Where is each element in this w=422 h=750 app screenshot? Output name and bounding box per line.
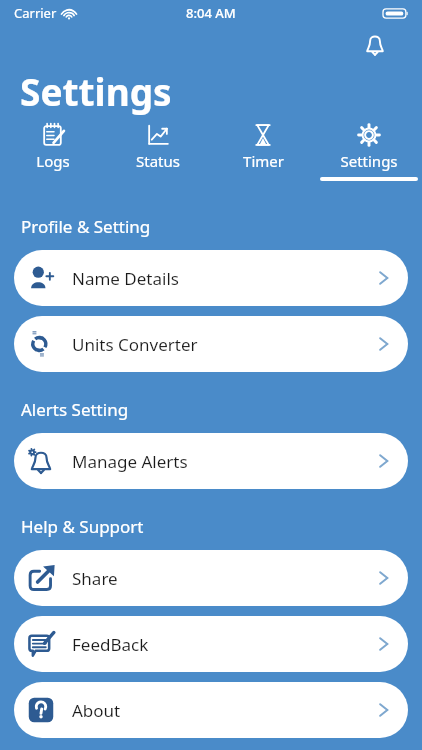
button[interactable]: Manage Alerts — [14, 433, 408, 489]
staticText: Alerts Setting — [21, 398, 129, 421]
button[interactable]: Notifications — [358, 29, 392, 63]
button[interactable]: Name Details — [14, 250, 408, 306]
staticText: Help & Support — [21, 515, 144, 538]
staticText: Carrier — [14, 4, 57, 22]
staticText: 8:04 AM — [186, 4, 236, 22]
staticText: About — [72, 699, 378, 722]
button[interactable]: Units Converter — [14, 316, 408, 372]
button[interactable]: FeedBack — [14, 616, 408, 672]
staticText: FeedBack — [72, 633, 378, 656]
button[interactable]: Logs — [0, 122, 105, 181]
button[interactable]: Status — [105, 122, 210, 181]
button[interactable]: Share — [14, 550, 408, 606]
staticText: Name Details — [72, 267, 378, 290]
staticText: Share — [72, 567, 378, 590]
staticText: Units Converter — [72, 333, 378, 356]
button[interactable]: Settings — [316, 122, 422, 181]
staticText: Timer — [243, 151, 284, 171]
staticText: Logs — [36, 151, 70, 171]
button[interactable]: Timer — [210, 122, 316, 181]
staticText: Status — [136, 151, 180, 171]
staticText: Profile & Setting — [21, 215, 151, 238]
button[interactable]: About — [14, 682, 408, 738]
staticText: Settings — [340, 151, 398, 171]
staticText: Settings — [20, 66, 172, 116]
staticText: Manage Alerts — [72, 450, 378, 473]
